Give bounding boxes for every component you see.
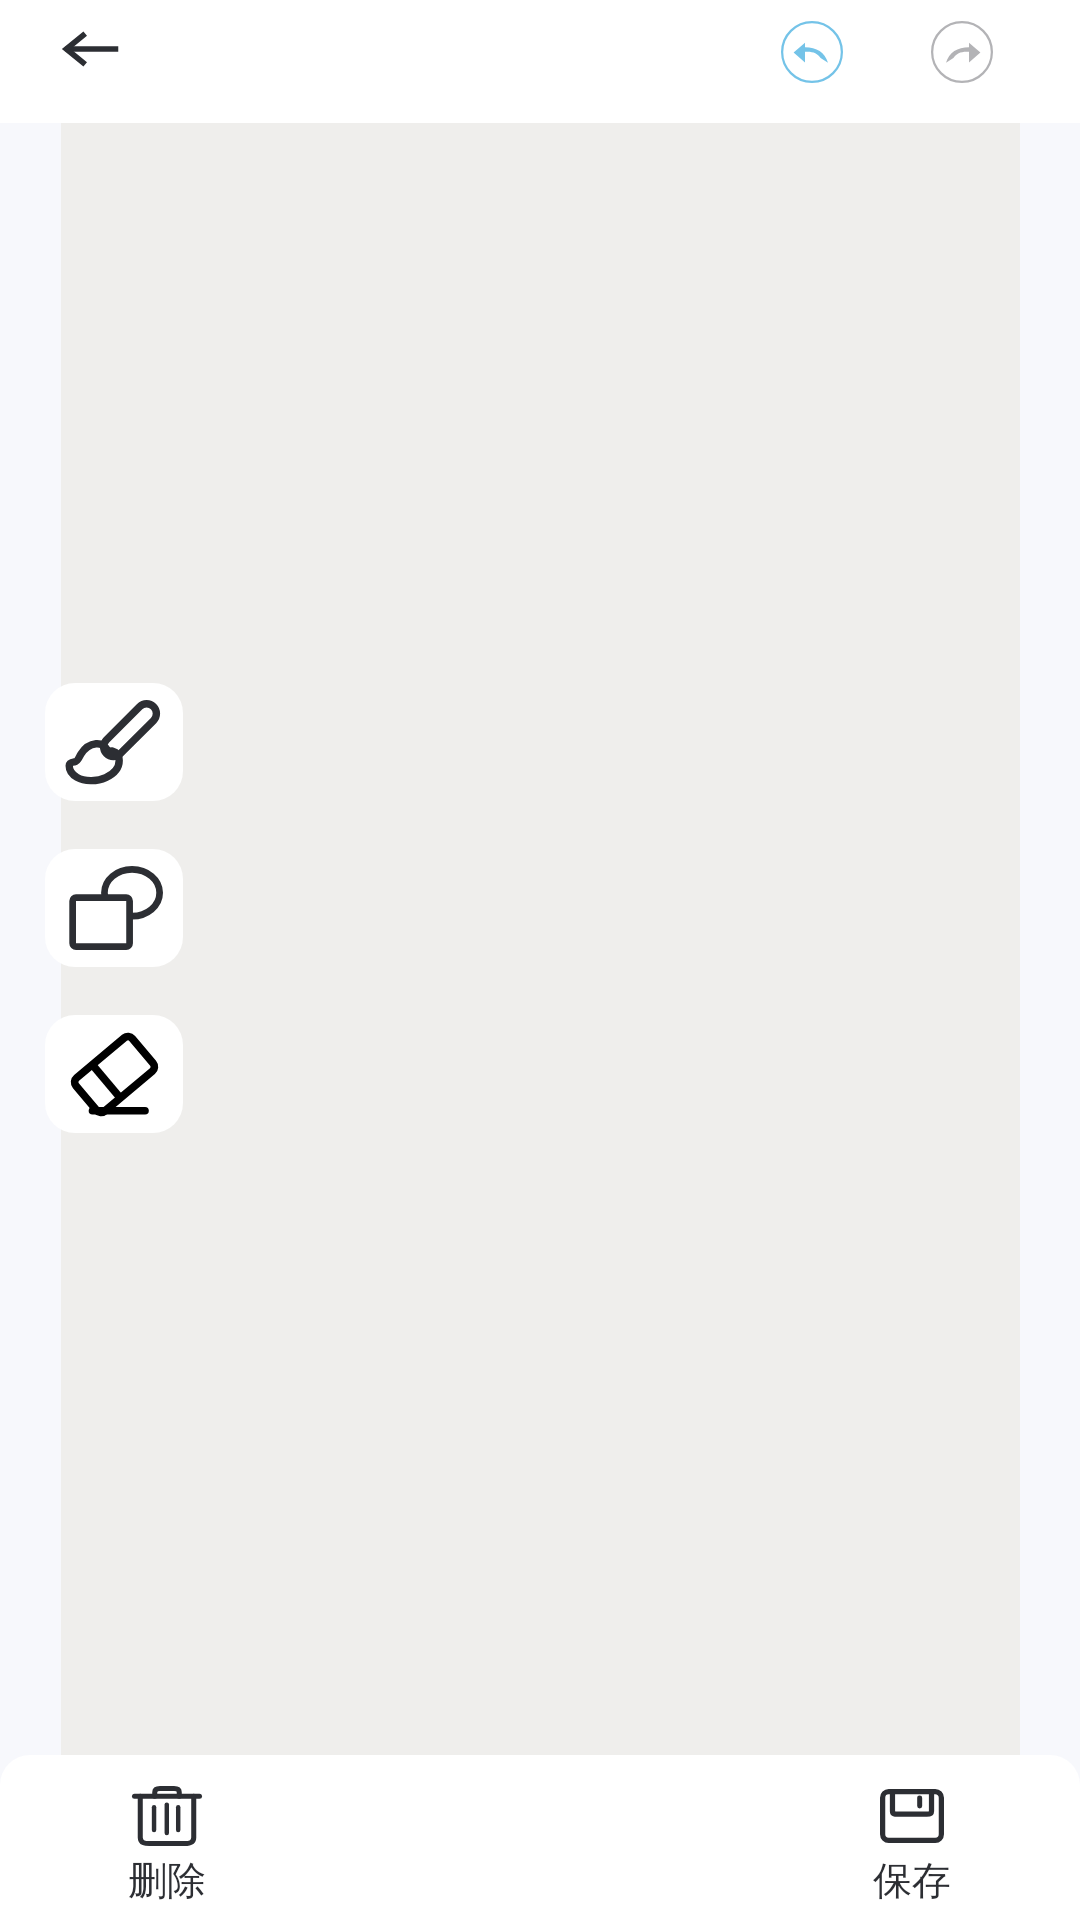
staticText: 删除 (128, 1856, 206, 1904)
button[interactable]: Brush (45, 683, 183, 801)
button[interactable]: Undo (762, 2, 862, 102)
button[interactable]: Shapes (45, 849, 183, 967)
button[interactable]: Back (41, 0, 141, 99)
button[interactable]: 保存 (837, 1778, 987, 1904)
staticText: 保存 (873, 1856, 951, 1904)
button[interactable]: Redo (912, 2, 1012, 102)
button[interactable]: Eraser (45, 1015, 183, 1133)
button[interactable]: 删除 (92, 1778, 242, 1904)
